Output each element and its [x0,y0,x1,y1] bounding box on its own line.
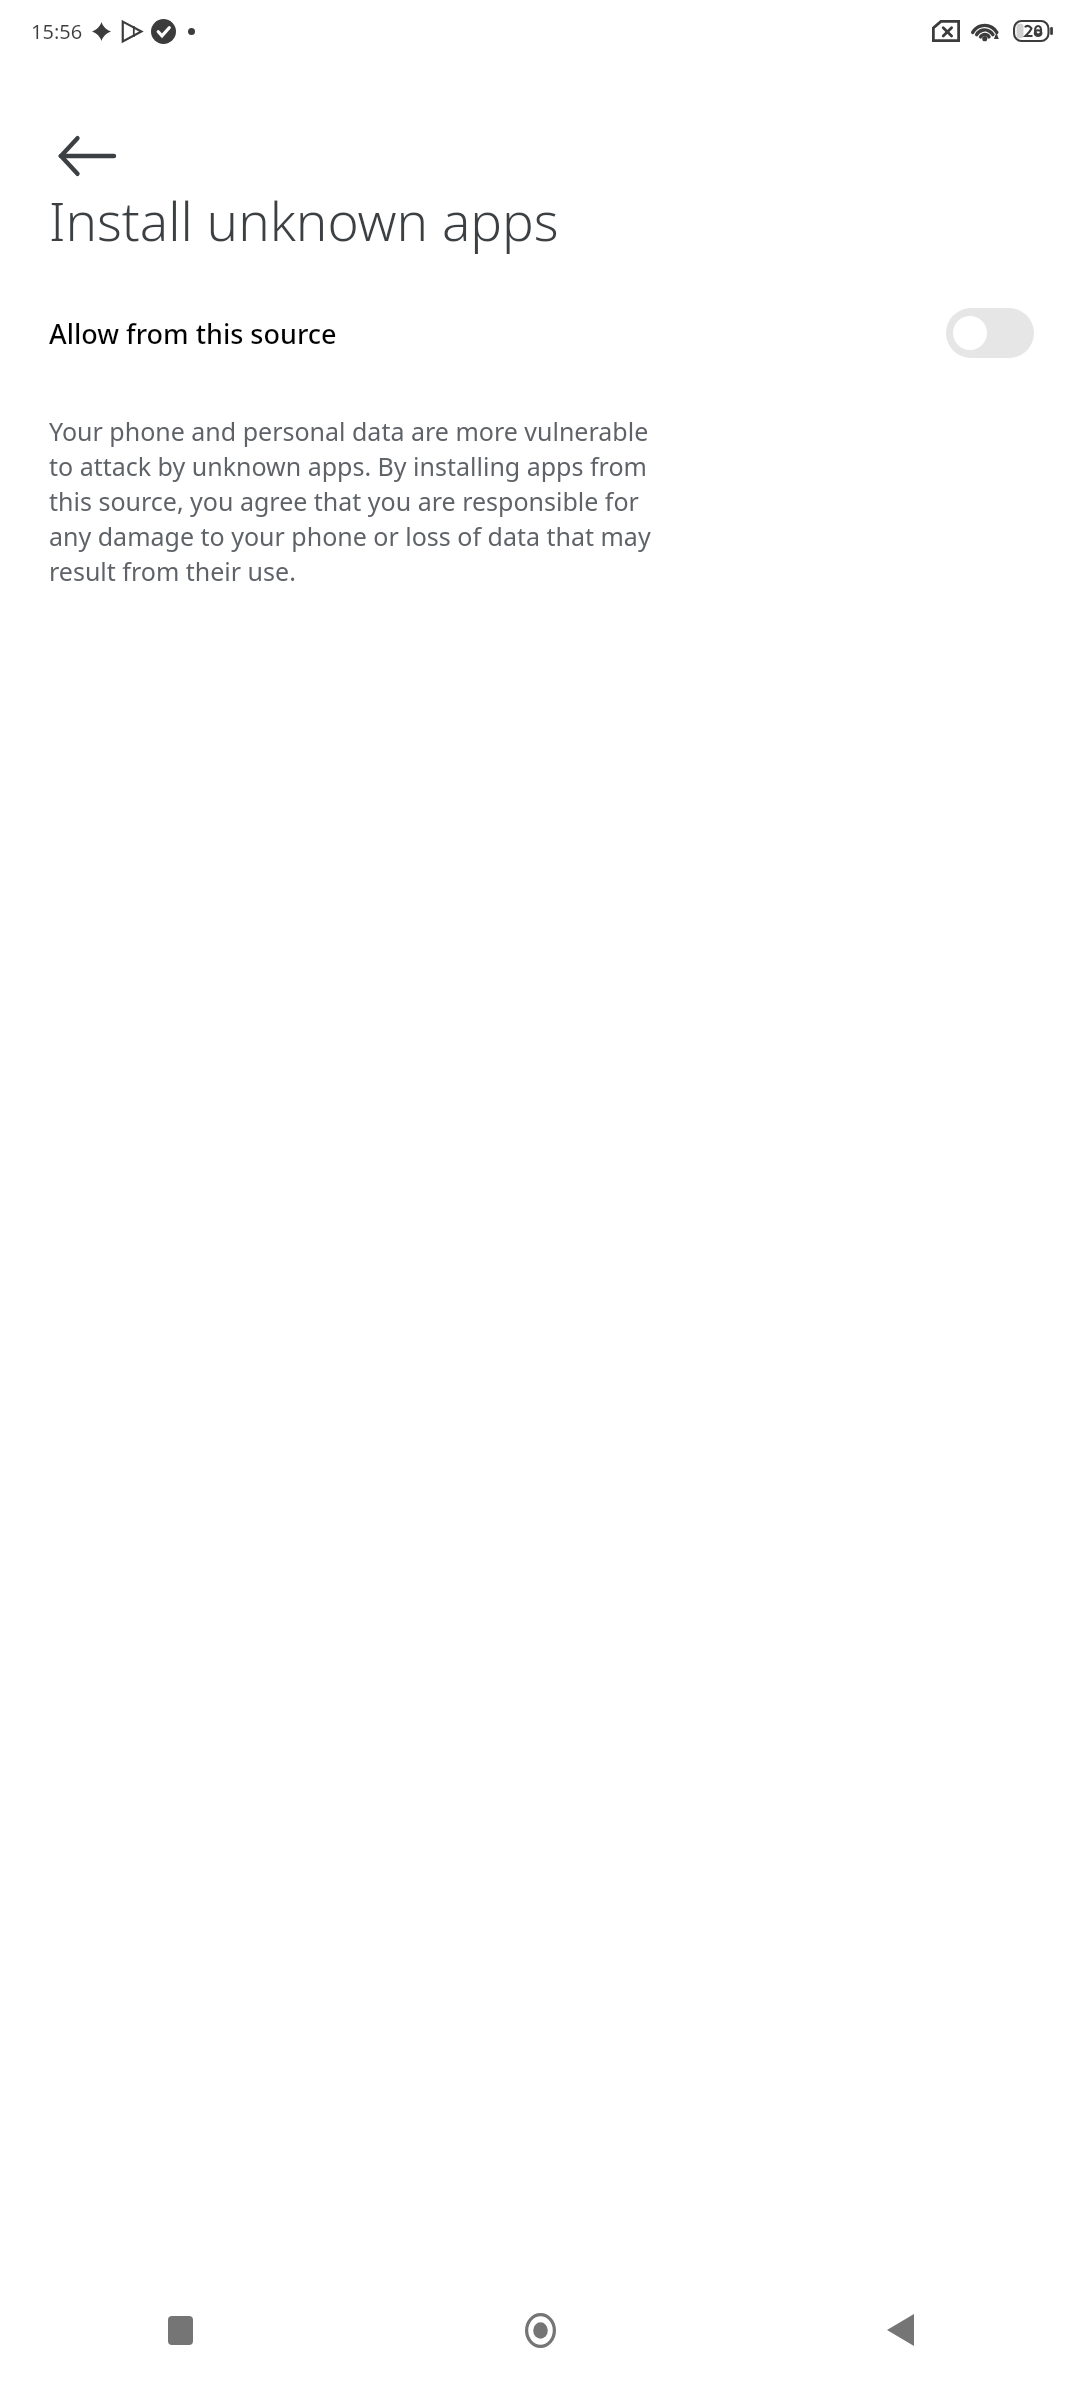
button[interactable]: Home [360,2260,720,2400]
staticText: Your phone and personal data are more vu… [49,414,666,588]
staticText: Allow from this source [49,315,946,352]
button[interactable]: Navigate up [37,106,137,206]
staticText: Install unknown apps [49,184,559,256]
staticText: 15:56 [31,18,83,45]
button[interactable]: Recent apps [0,2260,360,2400]
button[interactable]: Back [720,2260,1080,2400]
button[interactable]: Allow from this source [49,294,1034,372]
